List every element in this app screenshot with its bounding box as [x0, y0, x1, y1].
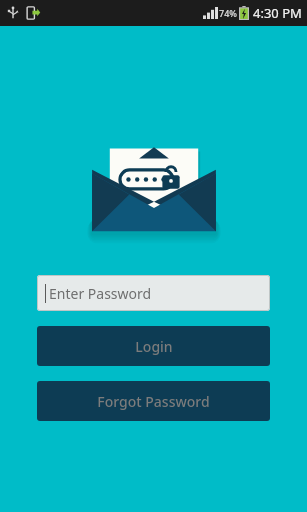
other: Password envelope: [86, 130, 222, 242]
staticText: 4:30 PM: [253, 4, 302, 22]
staticText: Forgot Password: [97, 392, 210, 411]
staticText: Enter Password: [49, 284, 152, 303]
staticText: Login: [135, 337, 173, 356]
staticText: 74%: [219, 7, 237, 19]
button[interactable]: Login: [37, 326, 270, 366]
button[interactable]: Forgot Password: [37, 381, 270, 421]
button[interactable]: Enter Password: [37, 275, 270, 311]
